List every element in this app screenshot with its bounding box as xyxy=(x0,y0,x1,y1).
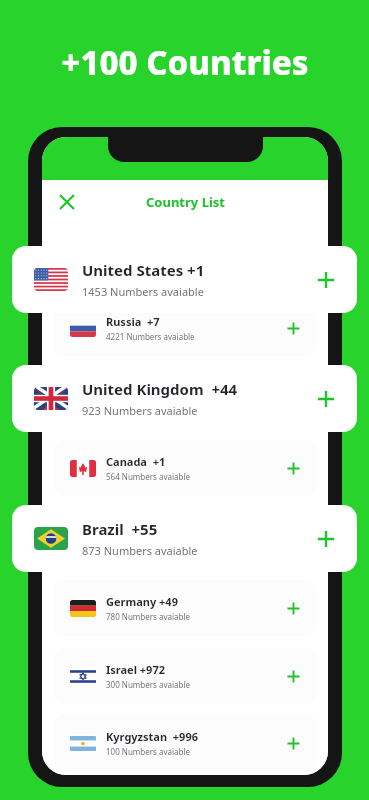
other: Add United Kingdom +44 xyxy=(309,382,343,416)
other: Add Kyrgyzstan +996 xyxy=(280,730,306,756)
staticText: 100 Numbers avaiable xyxy=(106,746,191,757)
staticText: 4221 Numbers avaiable xyxy=(106,331,195,342)
button[interactable]: Russia +7 xyxy=(54,300,316,356)
other: Add Germany +49 xyxy=(280,595,306,621)
staticText: 780 Numbers avaiable xyxy=(106,611,191,622)
staticText: +100 Countries xyxy=(61,40,309,85)
staticText: United Kingdom +44 xyxy=(82,379,238,399)
staticText: Germany +49 xyxy=(106,594,178,609)
staticText: United States +1 xyxy=(82,260,205,280)
staticText: 1453 Numbers avaiable xyxy=(82,284,204,299)
button[interactable]: United States +1 xyxy=(12,246,357,313)
staticText: 873 Numbers avaiable xyxy=(82,543,198,558)
other: Add Russia +7 xyxy=(280,315,306,341)
staticText: Brazil +55 xyxy=(82,519,158,539)
staticText: Russia +7 xyxy=(106,314,160,329)
staticText: Israel +972 xyxy=(106,662,165,677)
button[interactable]: United Kingdom +44 xyxy=(12,365,357,432)
button[interactable]: Brazil +55 xyxy=(12,505,357,572)
staticText: Country List xyxy=(146,193,225,211)
other: Add Canada +1 xyxy=(280,455,306,481)
staticText: 923 Numbers avaiable xyxy=(82,403,198,418)
staticText: 564 Numbers avaiable xyxy=(106,471,191,482)
staticText: Canada +1 xyxy=(106,454,166,469)
other: Add Israel +972 xyxy=(280,663,306,689)
staticText: Kyrgyzstan +996 xyxy=(106,729,198,744)
button[interactable]: Germany +49 xyxy=(54,580,316,636)
button[interactable]: Israel +972 xyxy=(54,648,316,704)
other: Add United States +1 xyxy=(309,263,343,297)
button[interactable]: Canada +1 xyxy=(54,440,316,496)
staticText: 300 Numbers avaiable xyxy=(106,679,191,690)
button[interactable]: Close xyxy=(52,187,82,217)
other: Add Brazil +55 xyxy=(309,522,343,556)
button[interactable]: Kyrgyzstan +996 xyxy=(54,715,316,771)
